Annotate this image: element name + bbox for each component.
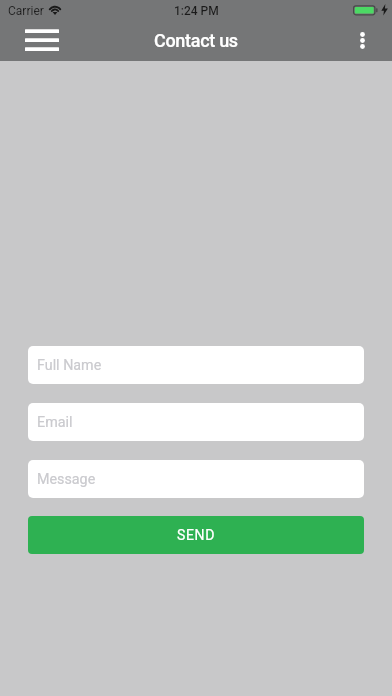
- staticText: SEND: [177, 527, 215, 543]
- staticText: 1:24 PM: [174, 4, 219, 18]
- button[interactable]: More options: [342, 20, 382, 61]
- button[interactable]: Full Name: [28, 346, 364, 384]
- button[interactable]: Open navigation menu: [18, 20, 66, 61]
- staticText: Email: [37, 414, 73, 431]
- button[interactable]: Message: [28, 460, 364, 498]
- button[interactable]: Email: [28, 403, 364, 441]
- staticText: Message: [37, 471, 96, 488]
- staticText: Contact us: [154, 30, 238, 51]
- staticText: Carrier: [8, 4, 44, 18]
- staticText: Full Name: [37, 357, 102, 374]
- button[interactable]: SEND: [28, 516, 364, 554]
